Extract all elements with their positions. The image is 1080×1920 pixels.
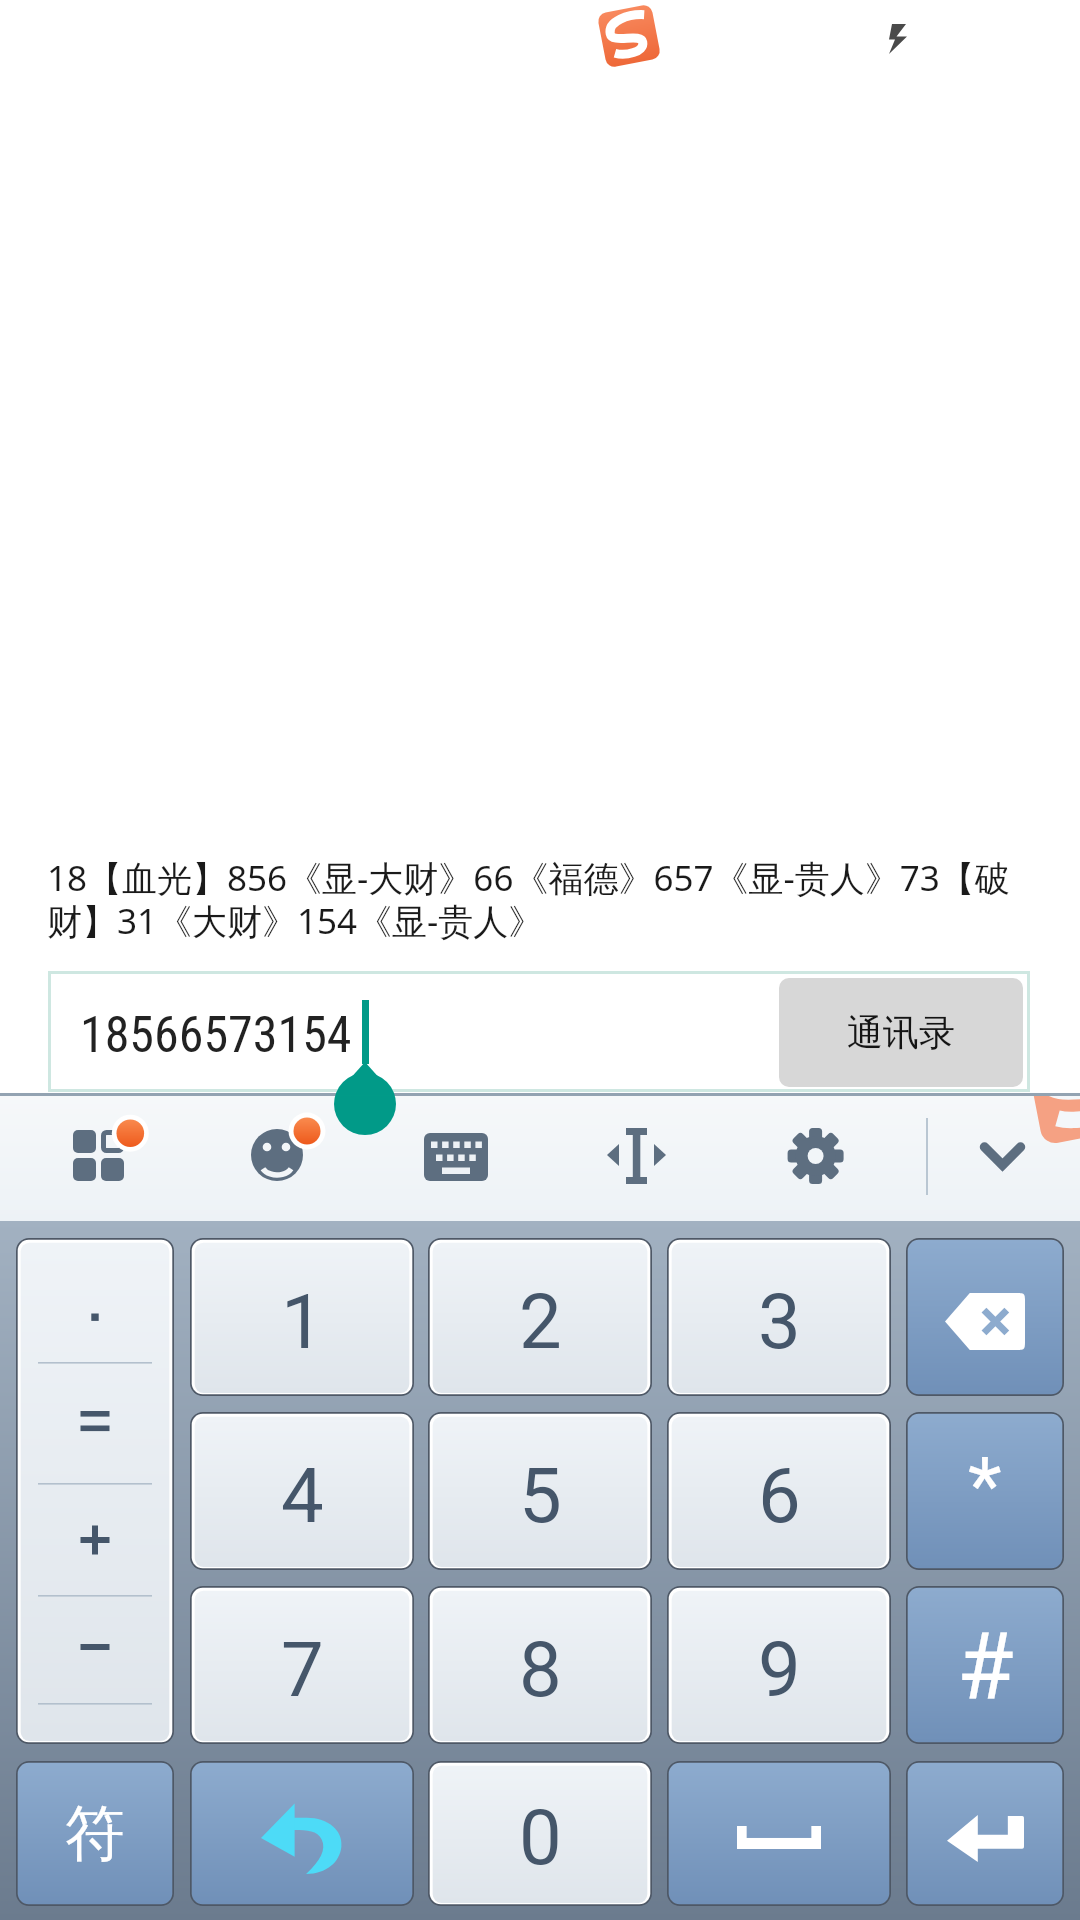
staticText: # [957, 1614, 1014, 1722]
staticText: * [968, 1441, 1002, 1532]
button[interactable]: 3 [667, 1238, 891, 1396]
staticText: 通讯录 [847, 1010, 955, 1055]
button[interactable]: Hide keyboard [939, 1093, 1067, 1221]
button[interactable] [16, 1238, 174, 1744]
button[interactable]: 通讯录 [779, 978, 1023, 1087]
button[interactable]: 8 [428, 1586, 652, 1744]
button[interactable]: 0 [428, 1761, 652, 1906]
button[interactable]: 1 [190, 1238, 414, 1396]
staticText: 18【血光】856《显-大财》66《福德》657《显-贵人》73【破财】31《大… [47, 854, 1046, 945]
staticText: 符 [65, 1796, 125, 1872]
staticText: 2 [519, 1277, 562, 1366]
button[interactable]: Keyboard layout [392, 1093, 520, 1221]
staticText: 9 [758, 1625, 801, 1714]
staticText: 1 [281, 1277, 324, 1366]
staticText: 7 [281, 1625, 324, 1714]
staticText: 6 [758, 1451, 801, 1540]
button[interactable]: Undo [190, 1761, 414, 1906]
staticText: 0 [519, 1793, 562, 1882]
button[interactable]: Settings [748, 1093, 876, 1221]
staticText: 3 [758, 1277, 801, 1366]
button[interactable]: 9 [667, 1586, 891, 1744]
button[interactable]: Backspace [906, 1238, 1064, 1396]
staticText: 18566573154 [80, 1006, 352, 1065]
staticText: 5 [519, 1451, 562, 1540]
staticText: 8 [519, 1625, 562, 1714]
button[interactable]: Hash [906, 1586, 1064, 1744]
staticText: 4 [281, 1451, 324, 1540]
button[interactable]: Move cursor [570, 1093, 698, 1221]
button[interactable]: Apps [36, 1093, 164, 1221]
button[interactable]: 6 [667, 1412, 891, 1570]
button[interactable]: Symbols [16, 1761, 174, 1906]
button[interactable]: 4 [190, 1412, 414, 1570]
button[interactable]: 5 [428, 1412, 652, 1570]
button[interactable]: 7 [190, 1586, 414, 1744]
button[interactable]: Enter [906, 1761, 1064, 1906]
button[interactable]: Emoji [214, 1093, 342, 1221]
button[interactable]: 2 [428, 1238, 652, 1396]
button[interactable]: Space [667, 1761, 891, 1906]
button[interactable]: Star [906, 1412, 1064, 1570]
